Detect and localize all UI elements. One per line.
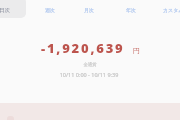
staticText: -1,920,639 [41, 39, 125, 57]
staticText: カスタム [163, 7, 180, 13]
button[interactable]: 年次 [121, 2, 141, 18]
staticText: 全通貨 [0, 62, 180, 68]
button[interactable]: カスタム [158, 2, 180, 18]
staticText: 10/11 0:00 - 10/11 9:39 [0, 71, 179, 78]
staticText: 円 [133, 46, 140, 55]
staticText: 週次 [45, 7, 55, 13]
staticText: 日次 [0, 7, 10, 14]
button[interactable]: 日次 [0, 0, 26, 18]
button[interactable]: 週次 [40, 2, 60, 18]
staticText: 月次 [84, 7, 94, 13]
staticText: 年次 [126, 7, 136, 13]
button[interactable]: 月次 [79, 2, 99, 18]
